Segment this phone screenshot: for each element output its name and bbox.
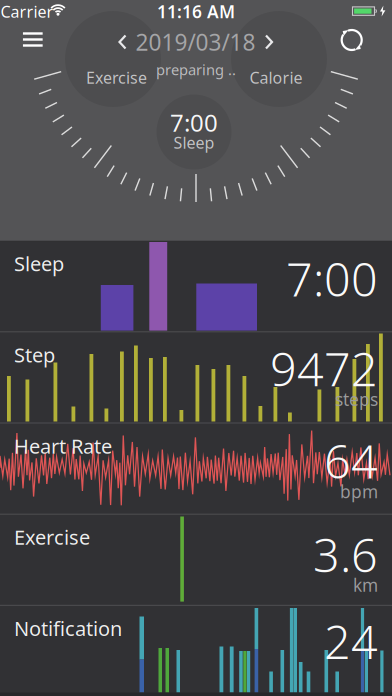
staticText: 7:00 — [170, 107, 218, 138]
button[interactable]: Exercise — [0, 514, 392, 605]
staticText: Exercise — [86, 67, 147, 88]
staticText: Step — [14, 341, 55, 368]
staticText: steps — [335, 388, 378, 411]
staticText: 2019/03/18 — [135, 27, 255, 57]
button[interactable]: Notification — [0, 605, 392, 696]
staticText: 24 — [324, 610, 378, 672]
staticText: 7:00 — [286, 247, 378, 309]
button[interactable] — [257, 30, 281, 54]
button[interactable]: Sleep — [0, 240, 392, 331]
button[interactable]: 2019/03/18 — [135, 27, 255, 57]
staticText: Notification — [14, 615, 122, 642]
staticText: bpm — [340, 480, 378, 503]
staticText: Exercise — [14, 524, 90, 550]
button[interactable] — [110, 30, 134, 54]
staticText: 64 — [324, 429, 378, 491]
staticText: preparing .. — [156, 60, 236, 79]
staticText: Calorie — [249, 67, 302, 88]
button[interactable] — [11, 17, 55, 61]
staticText: 3.6 — [313, 523, 378, 585]
staticText: km — [353, 574, 378, 597]
button[interactable] — [337, 25, 367, 55]
staticText: 11:16 AM — [157, 0, 235, 23]
staticText: Sleep — [173, 132, 214, 153]
staticText: Carrier — [0, 1, 53, 22]
staticText: Sleep — [14, 250, 64, 277]
button[interactable]: Heart Rate — [0, 422, 392, 514]
button[interactable]: Step — [0, 331, 392, 422]
staticText: 9472 — [270, 337, 378, 399]
staticText: Heart Rate — [14, 433, 112, 459]
